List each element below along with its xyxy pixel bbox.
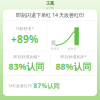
staticText: 即刻闪退下单红 14 天改善红印 (16, 11, 84, 19)
staticText: 使用后15秒 (67, 47, 80, 50)
staticText: 83%认同 (8, 60, 44, 72)
staticText: 14天改善红印 (8, 83, 32, 88)
staticText: 15秒秒涨* (15, 26, 33, 31)
staticText: 88%认同 (56, 60, 92, 72)
staticText: 使用前 (50, 47, 59, 50)
staticText: 王冕 (46, 1, 54, 6)
staticText: 即刻舒缓刺痛* (13, 54, 39, 59)
staticText: Dr.Wu (46, 6, 54, 9)
staticText: +89% (11, 32, 38, 46)
staticText: 即刻舒缓刺痒* (61, 54, 87, 59)
staticText: 87%认同 (33, 82, 59, 90)
